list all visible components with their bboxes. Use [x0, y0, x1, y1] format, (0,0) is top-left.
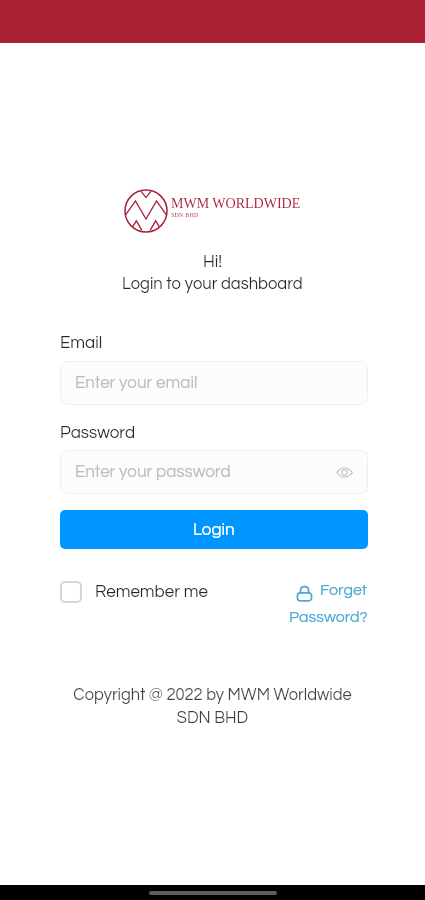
- button[interactable]: Remember me: [60, 581, 208, 603]
- staticText: Email: [60, 334, 103, 352]
- staticText: Enter your email: [75, 374, 198, 392]
- staticText: Copyright @ 2022 by MWM Worldwide SDN BH…: [73, 686, 352, 726]
- staticText: Password?: [289, 609, 368, 625]
- staticText: Password: [60, 424, 136, 442]
- staticText: SDN BHD: [171, 212, 199, 219]
- staticText: Login to your dashboard: [122, 275, 303, 292]
- staticText: Forget: [320, 582, 368, 598]
- staticText: Remember me: [95, 583, 208, 601]
- staticText: Enter your password: [75, 463, 231, 481]
- staticText: Login: [193, 521, 235, 539]
- staticText: MWM WORLDWIDE: [171, 196, 301, 212]
- button[interactable]: Forget: [289, 582, 368, 625]
- button[interactable]: Enter your password: [60, 450, 368, 494]
- button[interactable]: Enter your email: [60, 361, 368, 405]
- staticText: Hi!: [203, 253, 223, 271]
- button[interactable]: Show password: [332, 460, 356, 484]
- button[interactable]: Login: [60, 510, 368, 549]
